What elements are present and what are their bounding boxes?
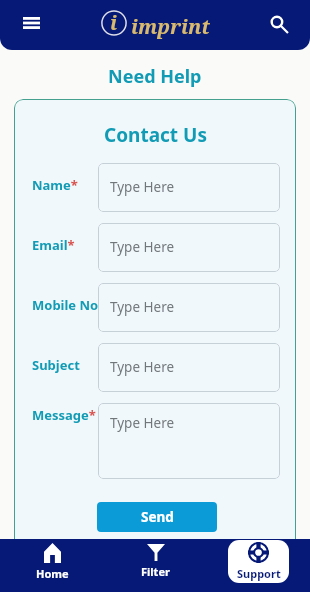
staticText: Type Here	[110, 178, 175, 196]
staticText: Type Here	[110, 358, 175, 376]
button[interactable]: Open navigation menu	[14, 6, 48, 40]
staticText: Type Here	[110, 414, 175, 432]
staticText: Support	[237, 566, 281, 581]
staticText: i	[110, 9, 118, 35]
staticText: Type Here	[110, 298, 175, 316]
staticText: Message*	[32, 406, 96, 424]
button[interactable]: Search	[262, 7, 296, 41]
button[interactable]: Send	[97, 502, 217, 532]
button[interactable]: Type Here	[98, 283, 280, 332]
staticText: Home	[36, 566, 69, 581]
staticText: Send	[141, 508, 174, 526]
staticText: Need Help	[108, 64, 202, 89]
staticText: imprint	[131, 13, 210, 40]
button[interactable]: Filter	[125, 540, 186, 583]
staticText: Type Here	[110, 238, 175, 256]
button[interactable]: Support	[228, 540, 289, 583]
staticText: Email*	[32, 236, 75, 254]
button[interactable]: Home	[22, 540, 83, 583]
button[interactable]: Type Here	[98, 163, 280, 212]
staticText: Mobile No	[32, 296, 99, 314]
button[interactable]: Type Here	[98, 223, 280, 272]
staticText: Name*	[32, 176, 78, 194]
button[interactable]: Type Here	[98, 343, 280, 392]
staticText: Filter	[141, 564, 170, 579]
button[interactable]: Type Here	[98, 403, 280, 479]
staticText: Subject	[32, 356, 80, 374]
staticText: Contact Us	[104, 122, 207, 148]
